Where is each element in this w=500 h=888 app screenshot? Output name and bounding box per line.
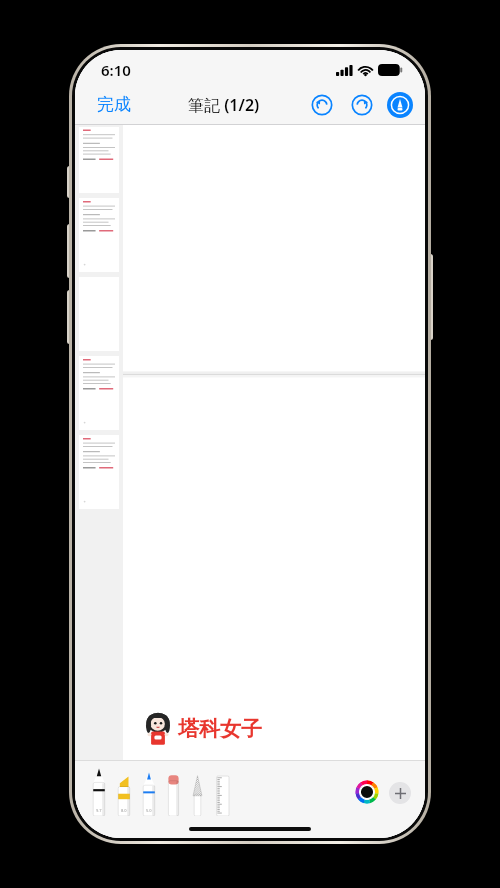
staticText: 8.0 xyxy=(121,808,127,813)
button[interactable] xyxy=(79,198,119,272)
button[interactable]: Pen xyxy=(141,772,157,816)
button[interactable]: 完成 xyxy=(89,90,139,119)
staticText: 筆記 (1/2) xyxy=(188,94,260,116)
staticText: 塔科女子 xyxy=(178,716,262,742)
staticText: 9.7 xyxy=(96,808,102,813)
button[interactable] xyxy=(79,127,119,193)
button[interactable]: Eraser xyxy=(166,774,181,816)
button[interactable]: Redo xyxy=(347,90,377,120)
button[interactable]: Highlighter xyxy=(116,774,132,816)
staticText: 5.0 xyxy=(146,808,152,813)
button[interactable]: Lasso select xyxy=(190,774,205,816)
button[interactable] xyxy=(79,435,119,509)
button[interactable]: Pen xyxy=(91,768,107,816)
button[interactable]: Undo xyxy=(307,90,337,120)
button[interactable]: Ruler xyxy=(214,774,231,816)
button[interactable]: Colour picker xyxy=(355,780,379,804)
button[interactable]: Markup tools xyxy=(387,92,413,118)
staticText: 完成 xyxy=(97,94,131,115)
staticText: 6:10 xyxy=(101,60,131,80)
button[interactable]: Add tool xyxy=(389,782,411,804)
button[interactable] xyxy=(79,356,119,430)
